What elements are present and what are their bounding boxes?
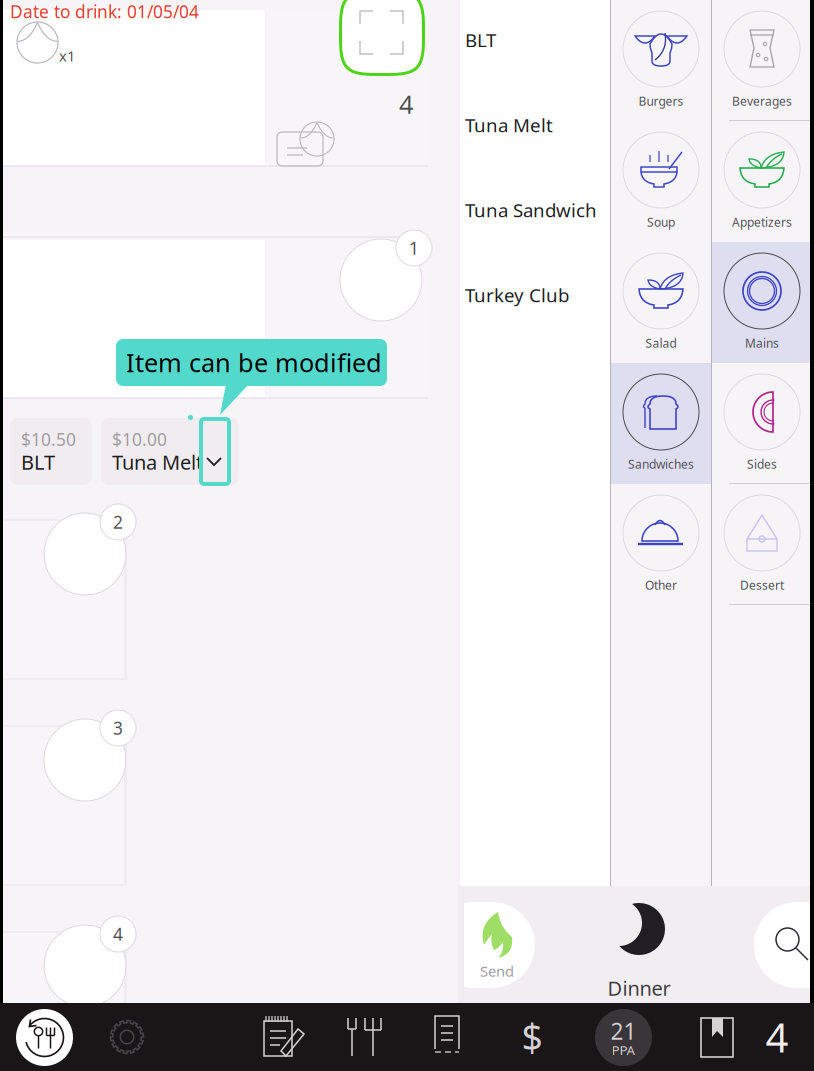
staticText: BLT (21, 449, 55, 475)
staticText: Dinner (607, 975, 670, 1001)
button[interactable]: Burgers (611, 0, 711, 121)
button[interactable]: $10.00 (101, 418, 239, 485)
button[interactable]: Dessert (712, 484, 812, 605)
staticText: 2 (113, 510, 123, 533)
staticText: 4 (113, 922, 123, 945)
button[interactable]: Sides (712, 363, 812, 484)
staticText: Item can be modified (126, 346, 382, 379)
button[interactable]: Scan item (339, 0, 425, 76)
staticText: BLT (465, 28, 496, 52)
staticText: Sides (747, 456, 777, 472)
button[interactable]: Appetizers (712, 121, 812, 242)
staticText: 21 (610, 1016, 636, 1046)
button[interactable]: Salad (611, 242, 711, 363)
button[interactable]: Other (611, 484, 711, 605)
button[interactable]: Search (754, 902, 814, 988)
staticText: $10.50 (21, 428, 76, 451)
button[interactable]: Beverages (712, 0, 812, 121)
staticText: 1 (409, 236, 419, 259)
button[interactable]: Tuna Melt (465, 97, 655, 153)
staticText: Dessert (740, 577, 784, 593)
button[interactable]: Tuna Sandwich (465, 182, 655, 238)
button[interactable]: Payment (510, 1013, 554, 1061)
staticText: Other (645, 577, 677, 593)
staticText: Send (480, 961, 514, 981)
staticText: Turkey Club (465, 283, 569, 307)
staticText: x1 (59, 46, 75, 65)
button[interactable]: Soup (611, 121, 711, 242)
button[interactable]: Turkey Club (465, 267, 655, 323)
button[interactable]: Orders (16, 1009, 73, 1066)
button[interactable]: Sandwiches (611, 363, 711, 484)
staticText: 3 (113, 716, 123, 739)
staticText: Date to drink: 01/05/04 (10, 0, 199, 23)
button[interactable]: Notes (261, 1013, 309, 1061)
staticText: Burgers (638, 93, 683, 109)
staticText: $10.00 (112, 428, 167, 451)
button[interactable]: Guests (755, 1013, 799, 1061)
staticText: Beverages (732, 93, 792, 109)
staticText: 4 (399, 87, 413, 121)
button[interactable]: Receipt (427, 1011, 469, 1059)
staticText: Sandwiches (628, 456, 694, 472)
button[interactable]: Courses (343, 1013, 387, 1061)
staticText: $ (521, 1012, 542, 1062)
button[interactable]: Mains (712, 242, 812, 363)
staticText: Soup (647, 214, 675, 230)
button[interactable]: Send (464, 902, 535, 988)
staticText: PPA (611, 1041, 635, 1059)
staticText: Tuna Melt (465, 113, 553, 137)
button[interactable]: Settings (105, 1015, 149, 1059)
staticText: Salad (645, 335, 676, 351)
staticText: 4 (765, 1010, 788, 1063)
staticText: Mains (745, 335, 779, 351)
staticText: Tuna Melt (112, 449, 203, 475)
button[interactable]: Guide (695, 1013, 739, 1061)
button[interactable]: 21 (595, 1009, 652, 1066)
button[interactable]: $10.50 (10, 418, 92, 485)
staticText: Tuna Sandwich (465, 198, 597, 222)
staticText: Appetizers (732, 214, 792, 230)
button[interactable]: BLT (465, 12, 655, 68)
button[interactable]: Dinner (594, 903, 684, 1003)
